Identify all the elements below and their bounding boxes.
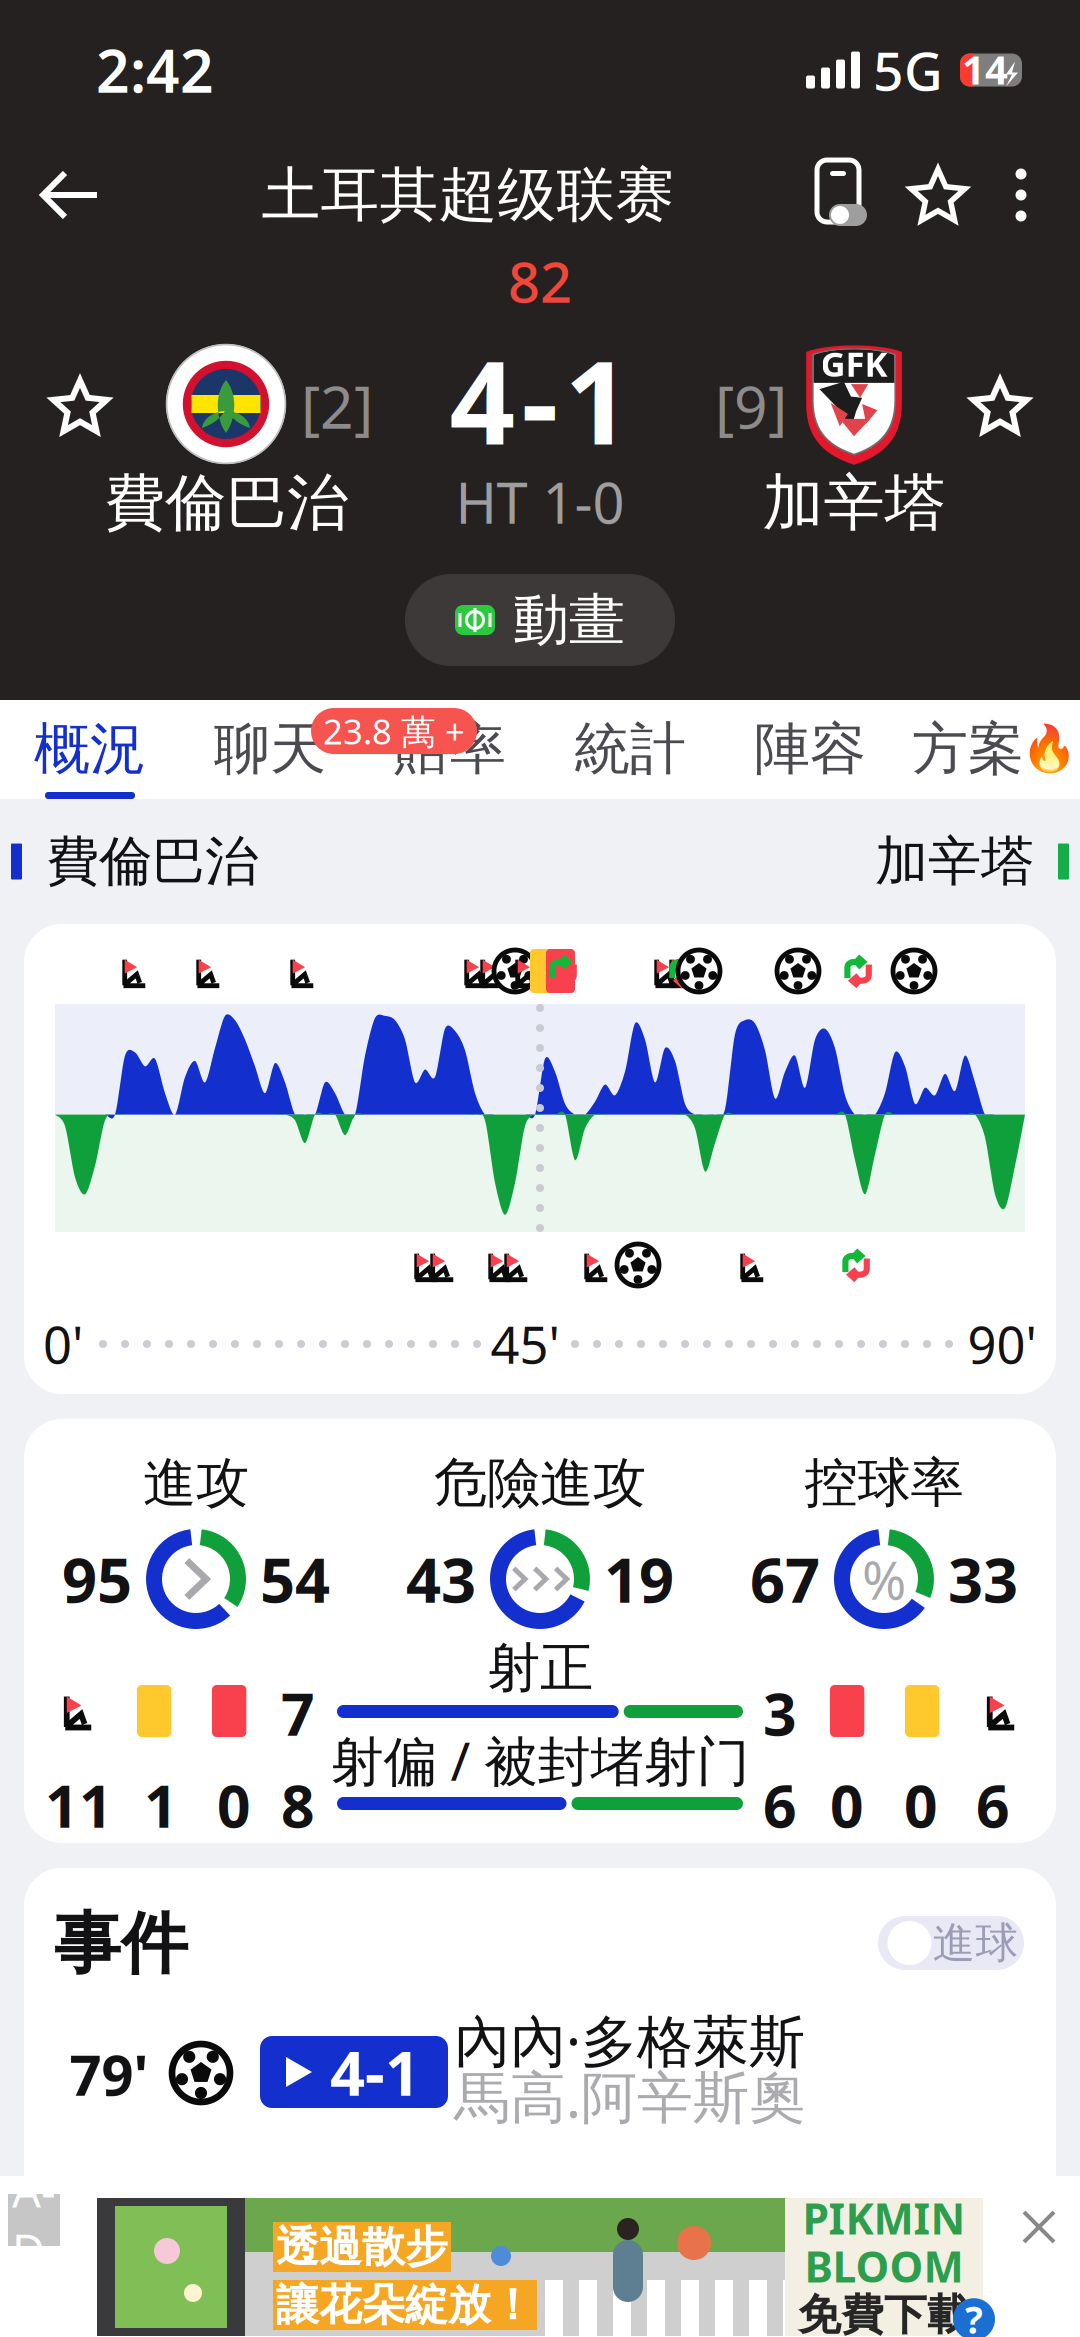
staticText: 0 xyxy=(217,1766,251,1844)
staticText: 79' xyxy=(69,2037,148,2111)
button[interactable]: Close ad xyxy=(1004,2192,1074,2262)
button[interactable]: Favourite Gaziantep xyxy=(950,356,1050,456)
button[interactable]: Watch goal replay, 4-1 xyxy=(260,2036,448,2108)
button[interactable]: Add to favourites xyxy=(892,140,984,250)
staticText: [2] xyxy=(301,367,373,445)
staticText: 19 xyxy=(604,1538,674,1620)
staticText: 費倫巴治 xyxy=(46,829,258,894)
staticText: 讓花朵綻放！ xyxy=(276,2279,534,2331)
button[interactable]: Back xyxy=(0,140,140,250)
staticText: 43 xyxy=(406,1538,476,1620)
staticText: 賠率 xyxy=(394,715,506,783)
staticText: 3 xyxy=(763,1674,797,1752)
staticText: 54 xyxy=(260,1538,330,1620)
staticText: 概況 xyxy=(34,715,146,783)
staticText: 免費下載 xyxy=(798,2289,970,2337)
staticText: 動畫 xyxy=(513,586,625,654)
staticText: GFK xyxy=(820,340,887,386)
staticText: 加辛塔 xyxy=(762,465,945,541)
staticText: 費倫巴治 xyxy=(104,465,348,541)
button[interactable]: 陣容 xyxy=(720,700,900,799)
staticText: 0 xyxy=(904,1766,938,1844)
staticText: 23.8 萬 + xyxy=(323,708,465,754)
staticText: 進球 xyxy=(932,1917,1018,1969)
staticText: 危險進攻 xyxy=(434,1450,646,1516)
staticText: 4-1 xyxy=(330,2031,420,2113)
staticText: 14 xyxy=(962,42,1008,95)
staticText: % xyxy=(862,1544,906,1614)
staticText: 事件 xyxy=(54,1903,188,1985)
staticText: AD xyxy=(12,2160,56,2280)
staticText: - xyxy=(521,324,558,476)
button[interactable]: 統計 xyxy=(540,700,720,799)
staticText: 67 xyxy=(750,1538,820,1620)
button[interactable]: 動畫 xyxy=(405,574,675,666)
staticText: 統計 xyxy=(574,715,686,783)
staticText: 11 xyxy=(45,1766,113,1844)
button[interactable]: 聊天 xyxy=(180,700,360,799)
staticText: ? xyxy=(965,2294,983,2337)
staticText: HT 1-0 xyxy=(455,465,624,539)
staticText: 射正 xyxy=(487,1635,593,1701)
staticText: BLOOM xyxy=(804,2238,963,2294)
staticText: 95 xyxy=(62,1538,132,1620)
staticText: 6 xyxy=(763,1766,797,1844)
staticText: 射偏 / 被封堵射门 xyxy=(330,1725,749,1795)
button[interactable]: Device preferences xyxy=(796,140,892,250)
staticText: 陣容 xyxy=(754,715,866,783)
staticText: 8 xyxy=(281,1766,315,1844)
staticText: 🔥 xyxy=(1021,723,1077,775)
button[interactable]: 賠率 xyxy=(360,700,540,799)
staticText: 1 xyxy=(144,1766,178,1844)
staticText: 1 xyxy=(564,324,630,476)
staticText: 4 xyxy=(449,324,515,476)
staticText: 5G xyxy=(873,35,943,105)
staticText: [9] xyxy=(715,367,787,445)
staticText: 進攻 xyxy=(143,1450,249,1516)
staticText: 2:42 xyxy=(96,31,214,109)
staticText: 0' xyxy=(43,1310,83,1378)
staticText: 控球率 xyxy=(804,1450,963,1516)
staticText: 方案 xyxy=(912,715,1024,783)
staticText: 7 xyxy=(281,1674,315,1752)
button[interactable]: 方案 xyxy=(900,700,1080,799)
button[interactable]: 概況 xyxy=(0,700,180,799)
button[interactable]: Favourite Fenerbahce xyxy=(30,356,130,456)
button[interactable]: More options xyxy=(984,140,1058,250)
staticText: 0 xyxy=(830,1766,864,1844)
staticText: 82 xyxy=(508,244,572,318)
staticText: 透過散步 xyxy=(276,2221,448,2273)
staticText: 聊天 xyxy=(214,715,326,783)
staticText: 33 xyxy=(948,1538,1018,1620)
staticText: 45' xyxy=(490,1310,559,1378)
staticText: 內內·多格萊斯 xyxy=(454,2003,805,2077)
staticText: 土耳其超级联赛 xyxy=(261,159,674,231)
staticText: 馬高.阿辛斯奧 xyxy=(454,2059,805,2133)
staticText: 加辛塔 xyxy=(875,829,1034,894)
button[interactable]: Filter goals only xyxy=(878,1916,1024,1970)
staticText: 6 xyxy=(976,1766,1010,1844)
staticText: PIKMIN xyxy=(802,2190,965,2246)
staticText: 90' xyxy=(967,1310,1036,1378)
